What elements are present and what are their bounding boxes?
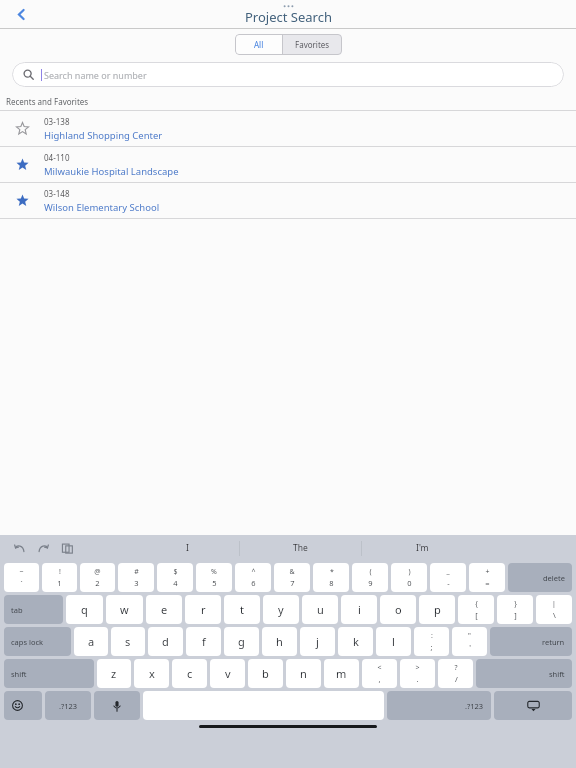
- button[interactable]: shift: [4, 659, 94, 688]
- staticText: %: [211, 567, 217, 577]
- button[interactable]: <: [362, 659, 397, 688]
- button[interactable]: .?123: [387, 691, 491, 720]
- staticText: .?123: [465, 701, 484, 711]
- button[interactable]: delete: [508, 563, 572, 592]
- button[interactable]: caps lock: [4, 627, 71, 656]
- button[interactable]: x: [134, 659, 169, 688]
- button[interactable]: %: [196, 563, 232, 592]
- button[interactable]: Undo: [10, 539, 28, 557]
- button[interactable]: 03-138: [0, 111, 576, 146]
- button[interactable]: s: [111, 627, 145, 656]
- staticText: =: [485, 578, 490, 588]
- button[interactable]: Paste: [58, 539, 76, 557]
- staticText: 1: [57, 578, 62, 588]
- staticText: `: [20, 578, 23, 588]
- button[interactable]: >: [400, 659, 435, 688]
- button[interactable]: &: [274, 563, 310, 592]
- button[interactable]: v: [210, 659, 245, 688]
- button[interactable]: ): [391, 563, 427, 592]
- button[interactable]: q: [66, 595, 103, 624]
- button[interactable]: }: [497, 595, 533, 624]
- button[interactable]: n: [286, 659, 321, 688]
- button[interactable]: return: [490, 627, 572, 656]
- button[interactable]: w: [106, 595, 143, 624]
- button[interactable]: #: [118, 563, 154, 592]
- staticText: I'm: [416, 542, 429, 554]
- staticText: Favorites: [295, 39, 330, 50]
- button[interactable]: Redo: [34, 539, 52, 557]
- button[interactable]: All: [235, 34, 282, 55]
- button[interactable]: I: [136, 535, 239, 561]
- staticText: *: [330, 567, 334, 577]
- button[interactable]: _: [430, 563, 466, 592]
- button[interactable]: .?123: [45, 691, 91, 720]
- button[interactable]: *: [313, 563, 349, 592]
- button[interactable]: g: [224, 627, 259, 656]
- button[interactable]: d: [148, 627, 183, 656]
- button[interactable]: shift: [476, 659, 572, 688]
- staticText: ): [408, 567, 411, 577]
- button[interactable]: 04-110: [0, 147, 576, 182]
- staticText: caps lock: [11, 637, 44, 647]
- button[interactable]: |: [536, 595, 572, 624]
- button[interactable]: Dictation: [94, 691, 140, 720]
- button[interactable]: (: [352, 563, 388, 592]
- staticText: shift: [11, 669, 27, 679]
- staticText: c: [187, 666, 193, 681]
- button[interactable]: Search name or number: [12, 62, 564, 87]
- button[interactable]: $: [157, 563, 193, 592]
- button[interactable]: k: [338, 627, 373, 656]
- button[interactable]: u: [302, 595, 338, 624]
- button[interactable]: m: [324, 659, 359, 688]
- staticText: n: [300, 666, 307, 681]
- button[interactable]: j: [300, 627, 335, 656]
- button[interactable]: :: [414, 627, 449, 656]
- staticText: ?: [454, 663, 458, 673]
- button[interactable]: Favorites: [283, 34, 342, 55]
- button[interactable]: f: [186, 627, 221, 656]
- button[interactable]: h: [262, 627, 297, 656]
- button[interactable]: t: [224, 595, 260, 624]
- button[interactable]: 03-148: [0, 183, 576, 218]
- staticText: ~: [19, 567, 24, 577]
- button[interactable]: tab: [4, 595, 63, 624]
- button[interactable]: i: [341, 595, 377, 624]
- staticText: :: [431, 631, 433, 641]
- staticText: Project Search: [245, 8, 332, 26]
- button[interactable]: @: [80, 563, 115, 592]
- button[interactable]: o: [380, 595, 416, 624]
- button[interactable]: a: [74, 627, 108, 656]
- button[interactable]: b: [248, 659, 283, 688]
- button[interactable]: ~: [4, 563, 39, 592]
- button[interactable]: p: [419, 595, 455, 624]
- button[interactable]: +: [469, 563, 505, 592]
- button[interactable]: e: [146, 595, 182, 624]
- button[interactable]: r: [185, 595, 221, 624]
- button[interactable]: ^: [235, 563, 271, 592]
- staticText: v: [225, 666, 231, 681]
- staticText: I: [186, 542, 189, 554]
- button[interactable]: Emoji: [4, 691, 42, 720]
- button[interactable]: {: [458, 595, 494, 624]
- button[interactable]: Back: [0, 0, 42, 29]
- staticText: 5: [212, 578, 217, 588]
- button[interactable]: l: [376, 627, 411, 656]
- staticText: #: [134, 567, 139, 577]
- button[interactable]: The: [240, 535, 361, 561]
- staticText: k: [353, 634, 359, 649]
- staticText: &: [289, 567, 295, 577]
- staticText: !: [59, 567, 61, 577]
- button[interactable]: !: [42, 563, 77, 592]
- button[interactable]: c: [172, 659, 207, 688]
- button[interactable]: I'm: [362, 535, 483, 561]
- button[interactable]: ": [452, 627, 487, 656]
- button[interactable]: y: [263, 595, 299, 624]
- staticText: s: [125, 634, 131, 649]
- button[interactable]: Hide keyboard: [494, 691, 572, 720]
- staticText: Wilson Elementary School: [44, 201, 160, 214]
- button[interactable]: ?: [438, 659, 473, 688]
- staticText: i: [358, 602, 361, 617]
- button[interactable]: z: [97, 659, 131, 688]
- staticText: [: [475, 610, 478, 620]
